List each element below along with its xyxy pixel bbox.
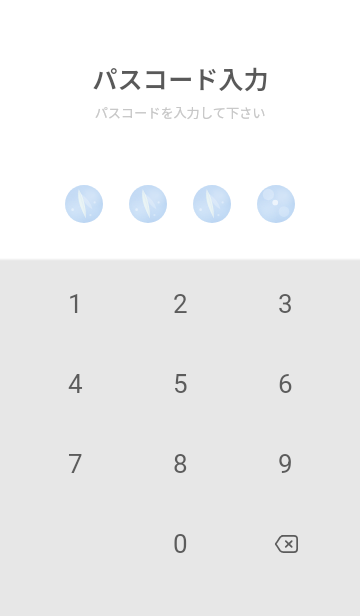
button[interactable]: 5: [128, 344, 233, 424]
staticText: 7: [68, 449, 83, 479]
staticText: パスコード入力: [92, 60, 269, 96]
staticText: 8: [173, 449, 188, 479]
button[interactable]: 4: [22, 344, 128, 424]
button[interactable]: 9: [233, 424, 338, 504]
staticText: 2: [173, 289, 188, 319]
button[interactable]: 8: [128, 424, 233, 504]
staticText: 9: [278, 449, 293, 479]
button[interactable]: 3: [233, 264, 338, 344]
staticText: 6: [278, 369, 293, 399]
button[interactable]: Backspace: [233, 504, 338, 584]
other: Backspace: [274, 535, 298, 553]
button[interactable]: 7: [22, 424, 128, 504]
button[interactable]: 2: [128, 264, 233, 344]
staticText: 5: [173, 369, 188, 399]
staticText: 0: [173, 529, 188, 559]
staticText: 1: [68, 289, 83, 319]
button[interactable]: 0: [128, 504, 233, 584]
staticText: 3: [278, 289, 293, 319]
staticText: 4: [68, 369, 83, 399]
staticText: パスコードを入力して下さい: [94, 103, 266, 122]
button[interactable]: 1: [22, 264, 128, 344]
button[interactable]: 6: [233, 344, 338, 424]
